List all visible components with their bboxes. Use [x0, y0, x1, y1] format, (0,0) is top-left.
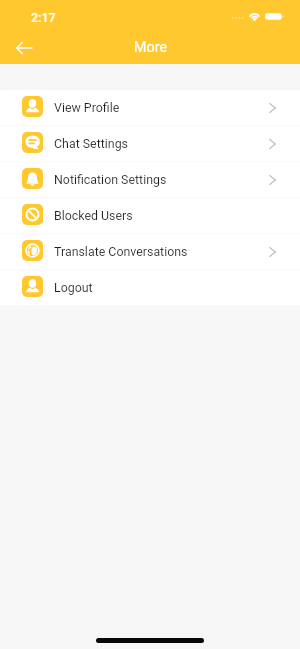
staticText: Logout: [54, 280, 93, 295]
staticText: 2:17: [31, 10, 56, 25]
button[interactable]: Back: [6, 32, 42, 64]
button[interactable]: View Profile: [0, 90, 300, 125]
staticText: Translate Conversations: [54, 244, 188, 259]
staticText: Notification Settings: [54, 172, 167, 187]
staticText: More: [134, 39, 167, 56]
button[interactable]: Translate Conversations: [0, 234, 300, 269]
button[interactable]: Notification Settings: [0, 162, 300, 197]
staticText: View Profile: [54, 100, 120, 115]
staticText: Chat Settings: [54, 136, 128, 151]
button[interactable]: Blocked Users: [0, 198, 300, 233]
button[interactable]: Chat Settings: [0, 126, 300, 161]
staticText: Blocked Users: [54, 208, 133, 223]
button[interactable]: Logout: [0, 270, 300, 305]
